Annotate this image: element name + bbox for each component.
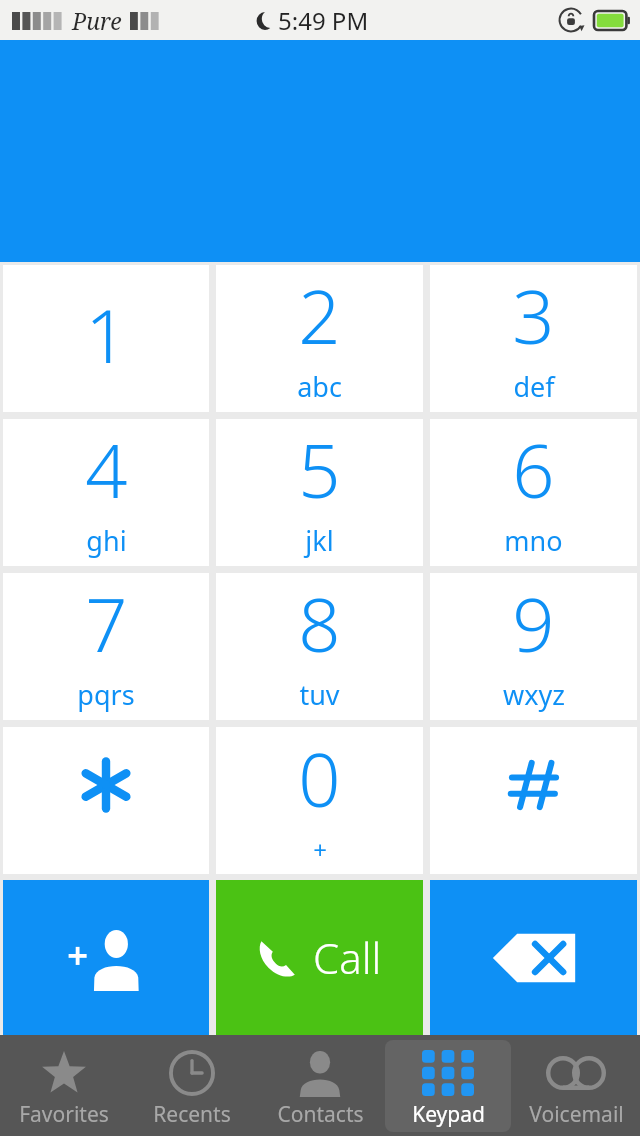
staticText: ghi — [86, 522, 127, 559]
staticText: Voicemail — [529, 1100, 624, 1129]
button[interactable]: 8 — [216, 573, 423, 720]
staticText: 6 — [512, 419, 555, 520]
staticText: 7 — [85, 573, 128, 674]
staticText: 5:49 PM — [278, 4, 369, 37]
button[interactable] — [3, 727, 209, 874]
staticText: 5 — [298, 419, 341, 520]
staticText: Keypad — [412, 1100, 485, 1129]
button[interactable]: Add contact — [3, 880, 209, 1035]
button[interactable]: Recents — [129, 1040, 255, 1132]
staticText: jkl — [305, 522, 334, 559]
staticText: mno — [504, 522, 563, 559]
button[interactable]: Keypad — [385, 1040, 511, 1132]
staticText: def — [513, 368, 555, 405]
button[interactable]: 5 — [216, 419, 423, 566]
button[interactable]: 3 — [430, 265, 637, 412]
staticText: Call — [313, 929, 382, 986]
staticText: 1 — [85, 284, 128, 385]
button[interactable]: Favorites — [1, 1040, 127, 1132]
staticText: Recents — [153, 1100, 231, 1129]
button[interactable]: 4 — [3, 419, 209, 566]
staticText: 4 — [85, 419, 128, 520]
button[interactable]: 7 — [3, 573, 209, 720]
button[interactable]: Contacts — [257, 1040, 383, 1132]
staticText: Favorites — [19, 1100, 109, 1129]
staticText: tuv — [299, 676, 340, 713]
button[interactable]: 6 — [430, 419, 637, 566]
staticText: 0 — [298, 728, 341, 829]
button[interactable]: Call — [216, 880, 423, 1035]
button[interactable]: Delete — [430, 880, 637, 1035]
staticText: abc — [297, 368, 342, 405]
button[interactable]: 1 — [3, 265, 209, 412]
button[interactable] — [430, 727, 637, 874]
button[interactable]: Voicemail — [513, 1040, 639, 1132]
button[interactable]: 0 — [216, 727, 423, 874]
staticText: + — [313, 833, 327, 866]
staticText: Pure — [72, 5, 122, 36]
staticText: Contacts — [277, 1100, 364, 1129]
staticText: 8 — [298, 573, 341, 674]
staticText: pqrs — [77, 676, 135, 713]
staticText: wxyz — [503, 676, 565, 713]
staticText: 2 — [298, 265, 341, 366]
staticText: 9 — [512, 573, 555, 674]
button[interactable]: 9 — [430, 573, 637, 720]
staticText: 3 — [512, 265, 555, 366]
button[interactable]: 2 — [216, 265, 423, 412]
